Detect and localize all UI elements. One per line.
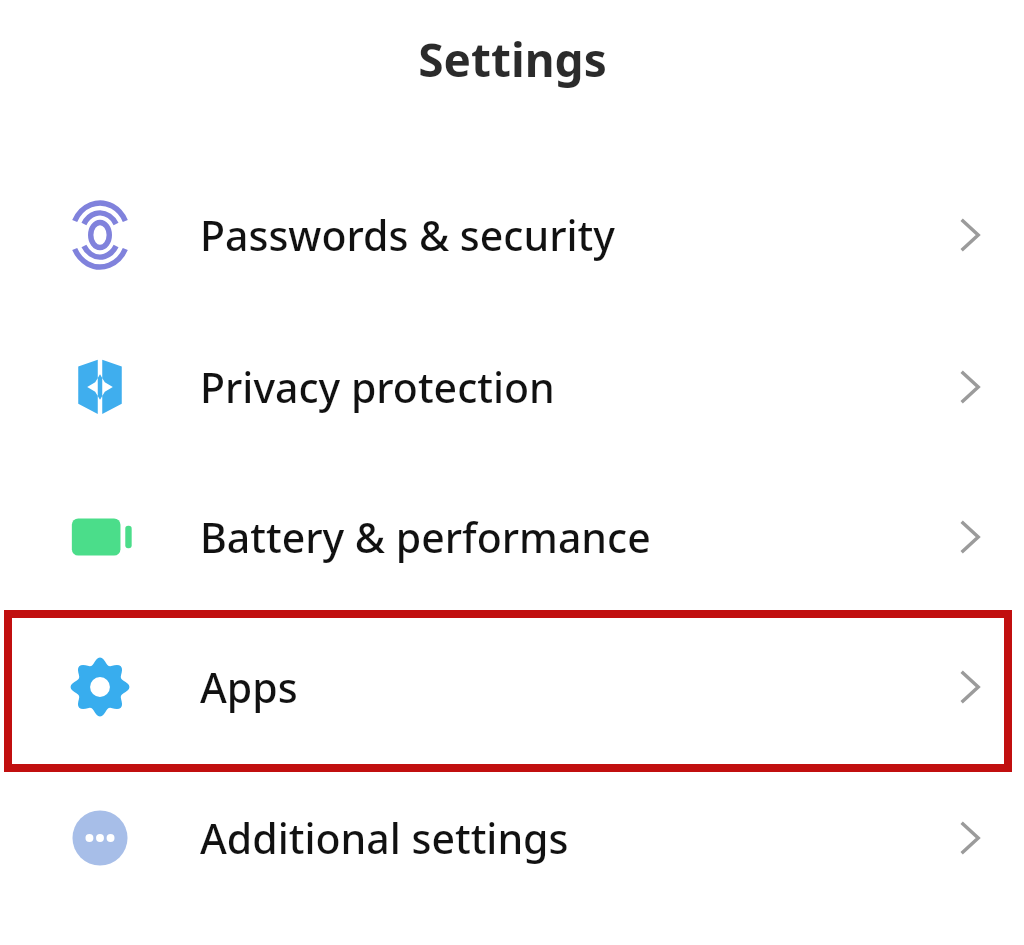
button[interactable]: Additional settings [0,763,1024,913]
button[interactable]: Apps [0,612,1024,762]
staticText: Apps [200,659,914,715]
staticText: Additional settings [200,810,914,866]
other: Open Battery & performance [914,462,1024,612]
other: Open Additional settings [914,763,1024,913]
other: Open Privacy protection [914,312,1024,462]
other: Open Apps [914,612,1024,762]
staticText: Settings [418,28,607,91]
staticText: Privacy protection [200,359,914,415]
staticText: Battery & performance [200,509,914,565]
other: Open Passwords & security [914,160,1024,310]
button[interactable]: Passwords & security [0,160,1024,310]
button[interactable]: Battery & performance [0,462,1024,612]
button[interactable]: Privacy protection [0,312,1024,462]
staticText: Passwords & security [200,207,914,263]
